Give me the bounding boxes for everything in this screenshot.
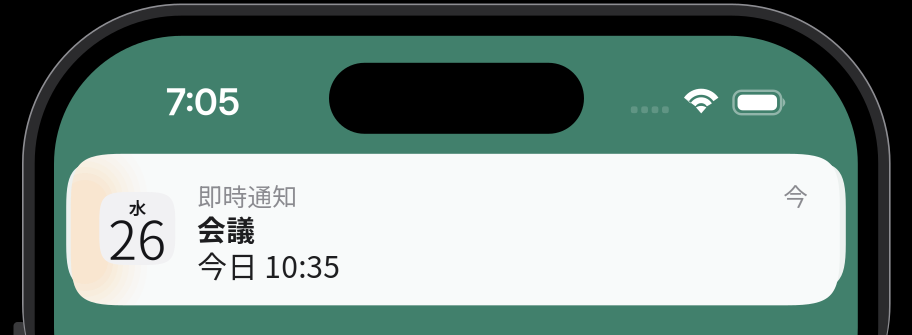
staticText: 26: [108, 198, 166, 275]
staticText: 水: [129, 195, 146, 220]
staticText: 会議: [197, 208, 255, 249]
staticText: 今: [783, 177, 808, 213]
staticText: 今日 10:35: [197, 243, 340, 287]
staticText: 即時通知: [197, 177, 297, 213]
button[interactable]: 水: [66, 154, 846, 305]
staticText: 7:05: [166, 80, 240, 124]
